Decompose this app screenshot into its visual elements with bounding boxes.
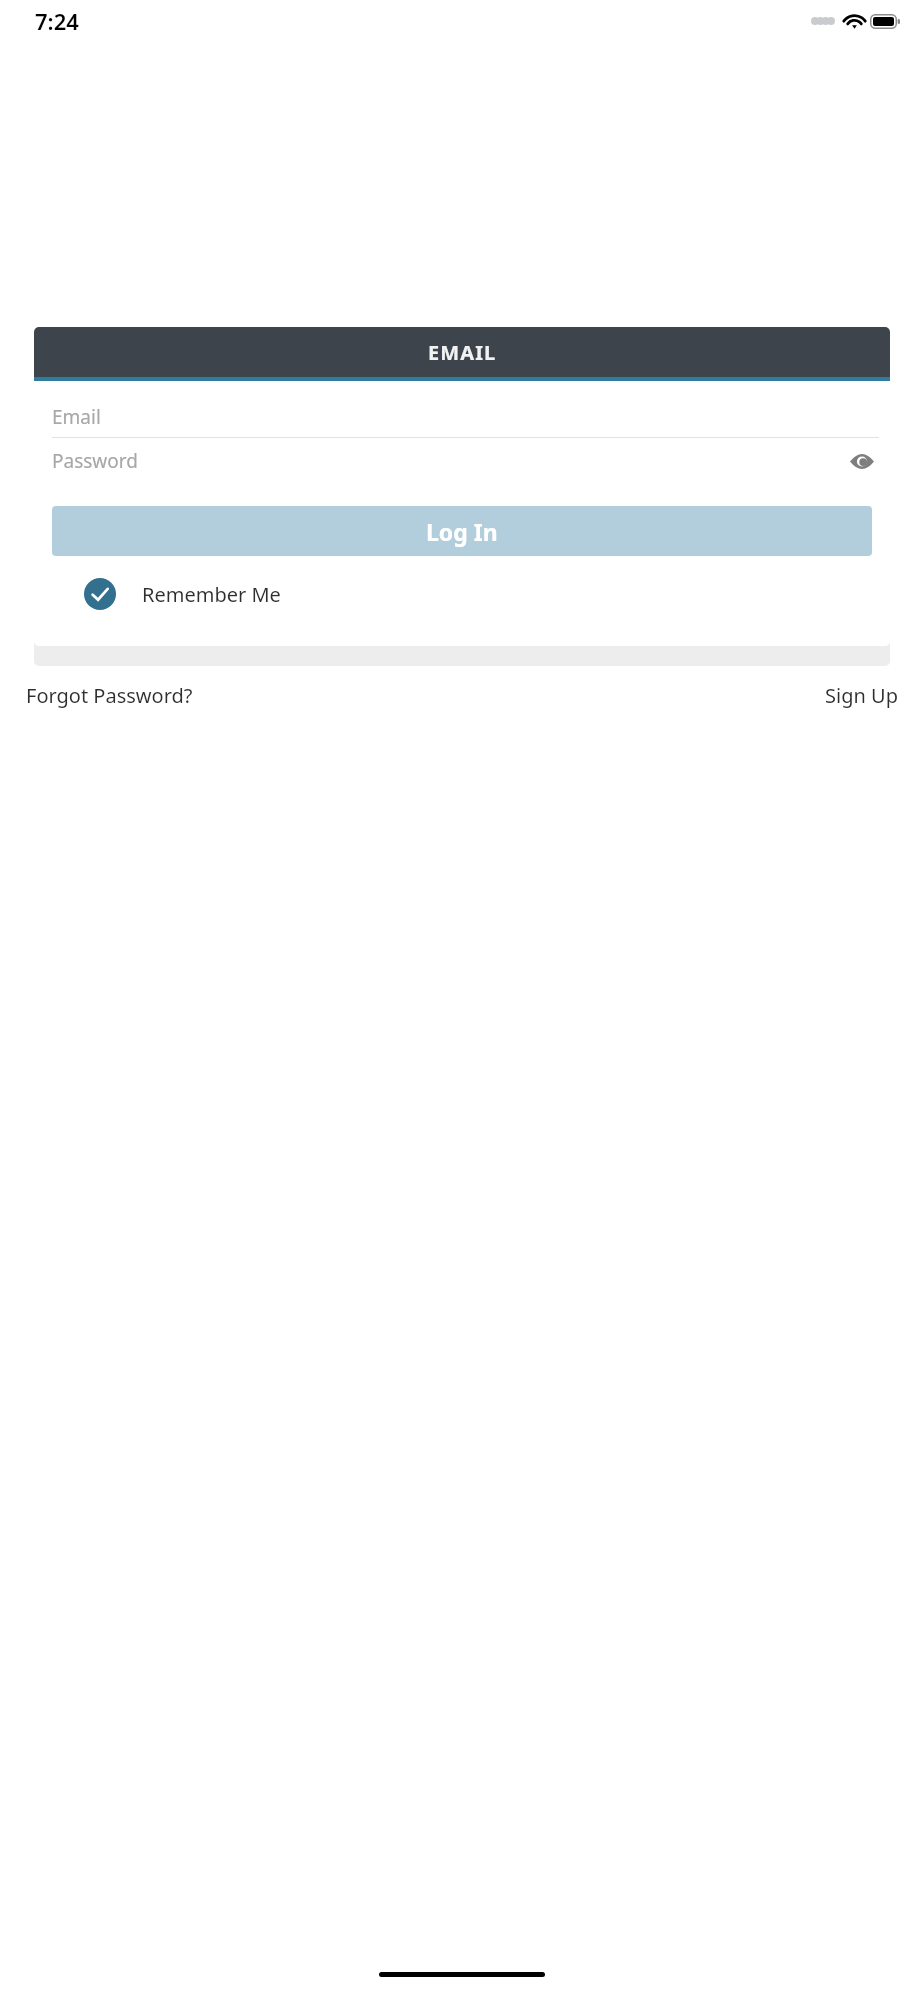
button[interactable]: Show password: [845, 444, 879, 478]
staticText: Forgot Password?: [26, 682, 193, 709]
button[interactable]: Password: [52, 438, 879, 484]
other: Wi-Fi: [844, 13, 865, 29]
button[interactable]: Sign Up: [825, 682, 898, 709]
staticText: Password: [52, 448, 845, 474]
button[interactable]: Forgot Password?: [26, 682, 193, 709]
staticText: Sign Up: [825, 682, 898, 709]
staticText: EMAIL: [428, 339, 497, 366]
staticText: Remember Me: [142, 581, 281, 608]
staticText: Log In: [426, 516, 498, 547]
staticText: 7:24: [35, 6, 79, 36]
button[interactable]: Log In: [52, 506, 872, 556]
other: Battery: [870, 14, 900, 29]
staticText: Email: [52, 404, 101, 430]
button[interactable]: Email: [52, 397, 879, 437]
button[interactable]: Remember Me: [84, 578, 281, 610]
